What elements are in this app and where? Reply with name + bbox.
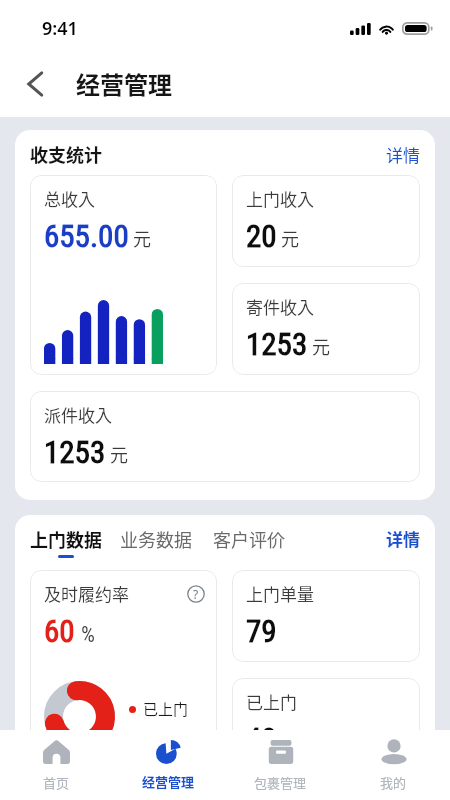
- staticText: 我的: [380, 773, 407, 792]
- staticText: 79: [246, 613, 277, 649]
- button[interactable]: 详情: [386, 142, 420, 167]
- button[interactable]: Help: [187, 585, 205, 603]
- staticText: 已上门: [246, 689, 297, 714]
- staticText: 收支统计: [30, 141, 102, 167]
- staticText: 元: [110, 441, 128, 467]
- staticText: 包裹管理: [254, 773, 307, 792]
- button[interactable]: 总收入: [30, 175, 217, 375]
- staticText: 48: [246, 721, 277, 757]
- staticText: 寄件收入: [246, 294, 314, 319]
- staticText: 业务数据: [120, 526, 192, 552]
- staticText: 经营管理: [76, 66, 172, 101]
- button[interactable]: 派件收入: [30, 391, 420, 482]
- button[interactable]: 寄件收入: [232, 283, 420, 375]
- staticText: 上门收入: [246, 186, 314, 211]
- button[interactable]: 已上门: [232, 678, 420, 770]
- staticText: %: [81, 622, 95, 648]
- staticText: 上门数据: [30, 526, 102, 552]
- staticText: 元: [312, 333, 330, 359]
- staticText: 元: [133, 225, 151, 251]
- staticText: 20: [246, 218, 277, 254]
- staticText: 60: [44, 613, 75, 649]
- button[interactable]: 上门单量: [232, 570, 420, 662]
- button[interactable]: 包裹管理: [224, 730, 337, 800]
- button[interactable]: 首页: [0, 730, 112, 800]
- staticText: 1253: [44, 434, 106, 470]
- staticText: 已上门: [143, 698, 189, 720]
- button[interactable]: 详情: [386, 526, 420, 551]
- staticText: 客户评价: [213, 526, 285, 552]
- staticText: 待上门: [143, 729, 189, 751]
- button[interactable]: 上门收入: [232, 175, 420, 267]
- staticText: 及时履约率: [44, 581, 129, 606]
- button[interactable]: 业务数据: [120, 526, 192, 555]
- staticText: 655.00: [44, 218, 129, 254]
- button[interactable]: 我的: [337, 730, 450, 800]
- staticText: 详情: [386, 142, 420, 167]
- staticText: 总收入: [44, 186, 95, 211]
- button[interactable]: 上门数据: [30, 526, 102, 558]
- staticText: 9:41: [42, 16, 78, 41]
- staticText: 首页: [43, 773, 70, 792]
- staticText: 派件收入: [44, 402, 112, 427]
- staticText: 元: [281, 225, 299, 251]
- staticText: 经营管理: [142, 772, 195, 791]
- button[interactable]: 客户评价: [213, 526, 285, 555]
- button[interactable]: 经营管理: [112, 730, 224, 800]
- button[interactable]: 及时履约率: [30, 570, 217, 770]
- staticText: ?: [193, 586, 199, 602]
- button[interactable]: Back: [15, 64, 55, 104]
- staticText: 上门单量: [246, 581, 314, 606]
- staticText: 详情: [386, 526, 420, 551]
- staticText: 1253: [246, 326, 308, 362]
